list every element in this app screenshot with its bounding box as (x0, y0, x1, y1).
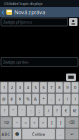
button[interactable]: Choose contact (69, 18, 77, 26)
staticText: € (65, 108, 67, 113)
staticText: ABC (2, 131, 11, 137)
button[interactable]: : (26, 105, 35, 117)
button[interactable]: 9 (63, 81, 71, 93)
staticText: Ukládání kopie displeje (3, 1, 42, 6)
button[interactable]: 6 (39, 81, 47, 93)
staticText: : (30, 108, 31, 113)
staticText: + (58, 96, 60, 102)
button[interactable]: 1/2 (0, 117, 12, 128)
staticText: " (12, 108, 14, 113)
staticText: 2 (11, 85, 13, 90)
staticText: ; (39, 108, 40, 113)
button[interactable]: ABC (0, 128, 12, 140)
staticText: ! (4, 108, 5, 113)
button[interactable]: Kč (70, 105, 79, 117)
staticText: * (42, 96, 44, 102)
button[interactable]: / (44, 105, 53, 117)
button[interactable]: Messages (6, 7, 13, 17)
button[interactable]: 5 (32, 81, 39, 93)
button[interactable]: ~ (12, 117, 21, 128)
button[interactable]: - (47, 93, 55, 105)
button[interactable]: 4 (24, 81, 32, 93)
button[interactable]: > (39, 117, 47, 128)
staticText: / (48, 108, 49, 113)
staticText: ⌫ (69, 120, 75, 125)
staticText: Nová zpráva (14, 9, 45, 16)
button[interactable]: # (8, 93, 16, 105)
staticText: ' (21, 108, 22, 113)
button[interactable]: ) (71, 93, 79, 105)
button[interactable]: % (24, 93, 32, 105)
button[interactable]: Zadejte zprávu (1, 57, 78, 66)
button[interactable]: ? (53, 105, 61, 117)
staticText: 8 (58, 85, 60, 90)
staticText: = (24, 120, 26, 125)
staticText: Čeština (32, 131, 45, 137)
staticText: ( (67, 96, 68, 102)
staticText: Zadejte příjemce (3, 19, 32, 25)
button[interactable]: [ (47, 117, 56, 128)
staticText: - (51, 96, 52, 102)
staticText: % (26, 96, 29, 102)
button[interactable]: 7 (47, 81, 55, 93)
staticText: Zadejte zprávu (3, 59, 28, 65)
button[interactable]: 0 (71, 81, 79, 93)
staticText: 6 (42, 85, 44, 90)
staticText: 0 (74, 85, 76, 90)
staticText: ☻ (15, 132, 19, 136)
staticText: 4 (27, 85, 29, 90)
button[interactable]: 8 (55, 81, 63, 93)
button[interactable]: ↵ (65, 128, 79, 140)
staticText: ↵ (70, 132, 73, 136)
button[interactable]: < (30, 117, 39, 128)
button[interactable]: ] (56, 117, 65, 128)
staticText: 7 (50, 85, 52, 90)
button[interactable]: € (61, 105, 70, 117)
button[interactable]: 3 (16, 81, 24, 93)
button[interactable]: = (21, 117, 30, 128)
staticText: . (60, 131, 61, 137)
button[interactable]: ! (0, 105, 9, 117)
staticText: Kč (73, 108, 77, 113)
button[interactable]: Change keyboard (66, 73, 76, 81)
staticText: 5 (35, 85, 37, 90)
staticText: @ (2, 96, 6, 102)
staticText: 1/2 (4, 120, 9, 125)
staticText: ~ (16, 120, 18, 125)
button[interactable]: + (55, 93, 63, 105)
button[interactable]: " (9, 105, 18, 117)
staticText: & (34, 96, 37, 102)
staticText: 1 (3, 85, 5, 90)
button[interactable]: ' (18, 105, 26, 117)
button[interactable]: Čeština (22, 128, 55, 140)
staticText: $ (19, 96, 21, 102)
button[interactable]: Zadejte příjemce (1, 18, 67, 26)
staticText: 9 (66, 85, 68, 90)
button[interactable]: 2 (8, 81, 16, 93)
button[interactable]: @ (0, 93, 8, 105)
staticText: [ (51, 120, 52, 125)
staticText: < (33, 120, 35, 125)
staticText: ) (74, 96, 75, 102)
button[interactable]: Back (0, 7, 6, 17)
button[interactable]: ⌫ (65, 117, 79, 128)
staticText: ? (56, 108, 58, 113)
button[interactable]: * (39, 93, 47, 105)
staticText: # (10, 96, 13, 102)
button[interactable]: ( (63, 93, 71, 105)
button[interactable]: ; (35, 105, 44, 117)
staticText: ] (60, 120, 61, 125)
button[interactable]: 1 (0, 81, 8, 93)
staticText: > (42, 120, 44, 125)
button[interactable]: $ (16, 93, 24, 105)
button[interactable]: . (55, 128, 65, 140)
staticText: 3 (19, 85, 21, 90)
button[interactable]: ☻ (12, 128, 22, 140)
button[interactable]: & (32, 93, 39, 105)
